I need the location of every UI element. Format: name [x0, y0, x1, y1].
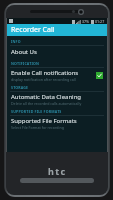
button[interactable]: Automatic Data Cleaning: [7, 92, 107, 106]
button[interactable]: Enable call notifications: [96, 72, 103, 79]
staticText: 01:27: [95, 19, 105, 24]
staticText: display notification after recording cal…: [11, 77, 76, 82]
staticText: SUPPORTED FILE FORMATS: [11, 109, 62, 114]
staticText: Automatic Data Cleaning: [11, 93, 82, 101]
staticText: NOTIFICATION: [11, 61, 40, 66]
button[interactable]: About Us: [7, 46, 107, 58]
staticText: Enable Call notifications: [11, 69, 79, 77]
staticText: 37%: [82, 19, 90, 24]
staticText: Delete all the recorded calls automatica…: [11, 101, 82, 106]
staticText: Recorder Call: [11, 25, 55, 35]
button[interactable]: Enable Call notifications: [7, 68, 107, 82]
staticText: INFO: [11, 39, 21, 44]
staticText: About Us: [11, 48, 37, 56]
staticText: STORAGE: [11, 85, 29, 90]
button[interactable]: Supported File Formats: [7, 116, 107, 130]
button[interactable]: Recorder Call: [7, 24, 107, 36]
staticText: Supported File Formats: [11, 117, 77, 125]
staticText: Select File Format for recording: [11, 125, 64, 130]
staticText: htc: [48, 165, 67, 177]
